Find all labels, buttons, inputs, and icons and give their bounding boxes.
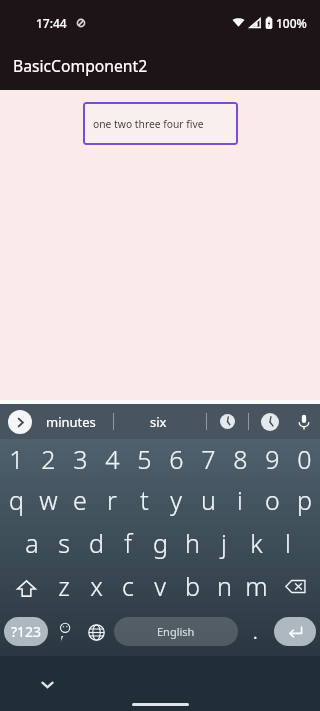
staticText: 9 (265, 442, 280, 476)
staticText: l (285, 526, 291, 560)
button[interactable]: Backspace (272, 568, 320, 611)
staticText: 17:44 (36, 15, 67, 31)
button[interactable]: v (144, 568, 176, 611)
staticText: t (140, 483, 149, 517)
button[interactable]: . (242, 611, 268, 654)
staticText: f (124, 526, 132, 560)
button[interactable]: d (80, 525, 112, 568)
button[interactable]: x (80, 568, 112, 611)
button[interactable]: Emoji and comma (50, 611, 78, 654)
button[interactable]: BasicComponent2 (0, 45, 320, 90)
staticText: one two three four five (93, 117, 204, 131)
staticText: . (253, 621, 258, 644)
button[interactable]: Hide keyboard (33, 670, 61, 698)
staticText: 3 (73, 442, 88, 476)
button[interactable]: 6 (160, 439, 192, 482)
staticText: ?123 (11, 622, 42, 641)
button[interactable]: c (112, 568, 144, 611)
button[interactable]: r (96, 482, 128, 525)
staticText: q (9, 483, 24, 517)
button[interactable]: b (176, 568, 208, 611)
button[interactable]: English (114, 617, 238, 646)
button[interactable]: ?123 (4, 617, 48, 646)
staticText: 1 (9, 442, 24, 476)
button[interactable]: Enter (274, 617, 316, 646)
staticText: b (185, 569, 200, 603)
button[interactable]: k (240, 525, 272, 568)
button[interactable]: minutes (38, 404, 104, 439)
staticText: j (221, 526, 227, 560)
staticText: BasicComponent2 (13, 55, 148, 76)
button[interactable]: h (176, 525, 208, 568)
staticText: 6 (169, 442, 184, 476)
button[interactable]: e (64, 482, 96, 525)
staticText: y (170, 483, 182, 517)
button[interactable]: Clock suggestion (212, 404, 243, 439)
staticText: u (201, 483, 216, 517)
button[interactable]: 8 (224, 439, 256, 482)
button[interactable]: 1 (0, 439, 32, 482)
staticText: z (58, 569, 70, 603)
staticText: 100% (276, 15, 307, 31)
staticText: w (39, 483, 58, 517)
staticText: six (150, 413, 167, 431)
button[interactable]: 3 (64, 439, 96, 482)
staticText: k (250, 526, 263, 560)
button[interactable]: 2 (32, 439, 64, 482)
button[interactable]: y (160, 482, 192, 525)
button[interactable]: 7 (192, 439, 224, 482)
button[interactable]: u (192, 482, 224, 525)
staticText: English (157, 624, 195, 639)
button[interactable]: j (208, 525, 240, 568)
button[interactable]: p (288, 482, 320, 525)
button[interactable]: q (0, 482, 32, 525)
button[interactable]: n (208, 568, 240, 611)
button[interactable]: f (112, 525, 144, 568)
button[interactable]: one two three four five (83, 102, 238, 145)
staticText: d (89, 526, 104, 560)
button[interactable]: Shift (0, 568, 48, 611)
button[interactable]: 0 (288, 439, 320, 482)
staticText: v (154, 569, 166, 603)
staticText: h (185, 526, 200, 560)
button[interactable]: Expand suggestions (8, 410, 32, 434)
staticText: r (107, 483, 117, 517)
button[interactable]: o (256, 482, 288, 525)
staticText: 2 (41, 442, 56, 476)
button[interactable]: l (272, 525, 304, 568)
button[interactable]: a (16, 525, 48, 568)
button[interactable]: Time suggestion (254, 404, 285, 439)
staticText: p (297, 483, 312, 517)
button[interactable]: Voice input (290, 404, 318, 439)
button[interactable]: z (48, 568, 80, 611)
button[interactable]: i (224, 482, 256, 525)
staticText: 8 (233, 442, 248, 476)
staticText: g (153, 526, 168, 560)
staticText: s (58, 526, 70, 560)
staticText: o (265, 483, 280, 517)
staticText: n (217, 569, 232, 603)
staticText: 5 (137, 442, 152, 476)
staticText: x (90, 569, 103, 603)
button[interactable]: six (120, 404, 196, 439)
button[interactable]: 4 (96, 439, 128, 482)
staticText: c (122, 569, 134, 603)
staticText: 7 (201, 442, 216, 476)
staticText: minutes (46, 413, 96, 431)
button[interactable]: g (144, 525, 176, 568)
staticText: e (73, 483, 87, 517)
staticText: 4 (105, 442, 120, 476)
button[interactable]: Switch language (82, 611, 110, 654)
staticText: i (237, 483, 243, 517)
staticText: m (245, 569, 268, 603)
button[interactable]: m (240, 568, 272, 611)
button[interactable]: t (128, 482, 160, 525)
button[interactable]: 9 (256, 439, 288, 482)
button[interactable]: w (32, 482, 64, 525)
button[interactable]: s (48, 525, 80, 568)
staticText: 0 (297, 442, 312, 476)
staticText: a (25, 526, 39, 560)
button[interactable]: 5 (128, 439, 160, 482)
